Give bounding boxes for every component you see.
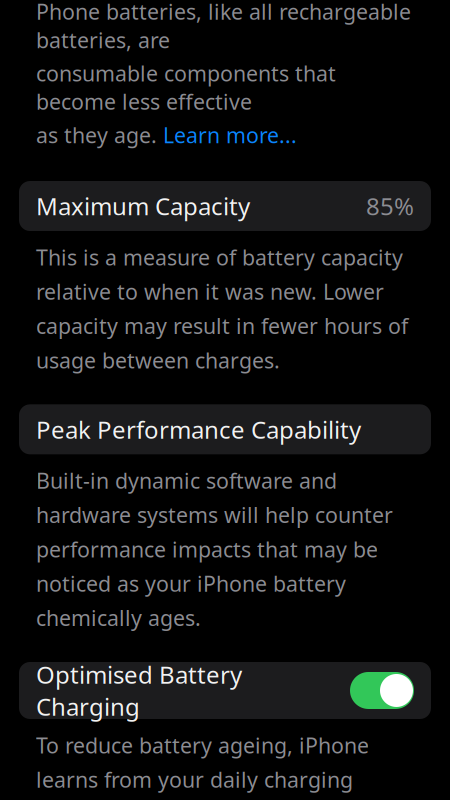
button[interactable]: Optimised Battery Charging (19, 662, 431, 719)
staticText: Built-in dynamic software and hardware s… (36, 466, 393, 632)
staticText: To reduce battery ageing, iPhone learns … (36, 731, 400, 800)
staticText: Optimised Battery Charging (36, 659, 242, 722)
button[interactable]: Peak Performance Capability (19, 404, 431, 454)
staticText: Phone batteries, like all rechargeable b… (36, 0, 411, 54)
button[interactable]: Maximum Capacity (19, 181, 431, 231)
staticText: 85% (366, 190, 414, 222)
staticText: This is a measure of battery capacity re… (36, 243, 408, 374)
staticText: Learn more... (163, 121, 297, 149)
button[interactable]: Learn more... (163, 121, 297, 149)
staticText: as they age. (36, 121, 163, 149)
staticText: consumable components that become less e… (36, 59, 336, 116)
staticText: Peak Performance Capability (36, 413, 361, 445)
staticText: Maximum Capacity (36, 190, 250, 222)
